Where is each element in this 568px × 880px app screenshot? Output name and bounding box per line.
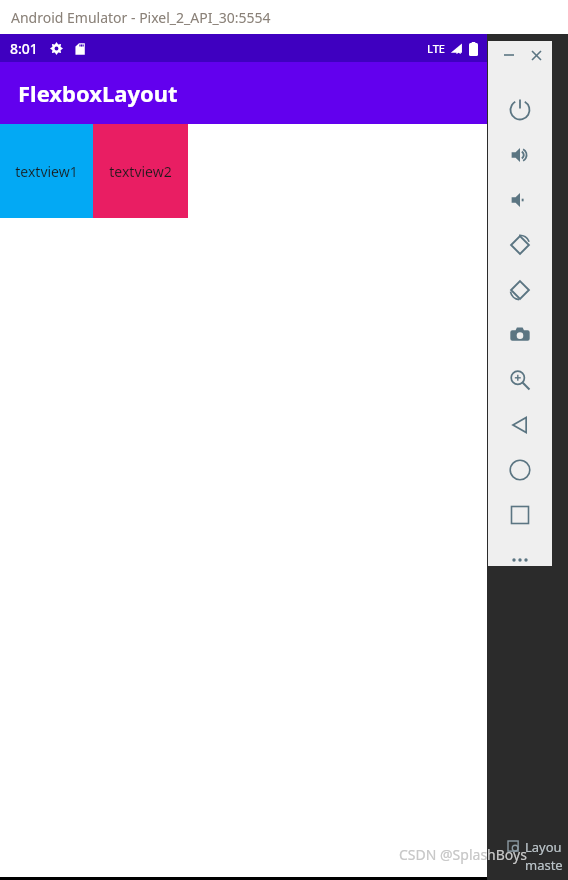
staticText: textview2 [109, 162, 172, 181]
staticText: Android Emulator - Pixel_2_API_30:5554 [11, 8, 271, 27]
button[interactable]: Volume up [498, 133, 542, 177]
button[interactable]: Screenshot [498, 313, 542, 357]
button[interactable]: Volume down [498, 178, 542, 222]
staticText: CSDN @SplashBoys [399, 845, 527, 864]
button[interactable]: Back [498, 403, 542, 447]
button[interactable]: FlexboxLayout [0, 62, 487, 124]
button[interactable]: Rotate left [498, 223, 542, 267]
button[interactable]: Recent apps [361, 877, 568, 880]
button[interactable]: textview2 [93, 124, 188, 218]
staticText: maste [525, 856, 563, 874]
button[interactable]: textview1 [0, 124, 93, 218]
button[interactable]: Rotate right [498, 268, 542, 312]
staticText: textview1 [15, 162, 78, 181]
button[interactable]: Minimize [498, 44, 520, 66]
staticText: 8:01 [10, 39, 38, 58]
button[interactable]: Home [221, 877, 568, 880]
button[interactable]: Power [498, 88, 542, 132]
button[interactable]: Home [498, 448, 542, 492]
staticText: LTE [427, 41, 445, 56]
button[interactable]: Close [525, 44, 547, 66]
button[interactable]: Zoom [498, 358, 542, 402]
staticText: Layou [525, 838, 562, 856]
button[interactable]: More [498, 538, 542, 582]
button[interactable]: Overview [498, 493, 542, 537]
button[interactable]: Back [80, 877, 567, 880]
staticText: FlexboxLayout [18, 78, 178, 108]
